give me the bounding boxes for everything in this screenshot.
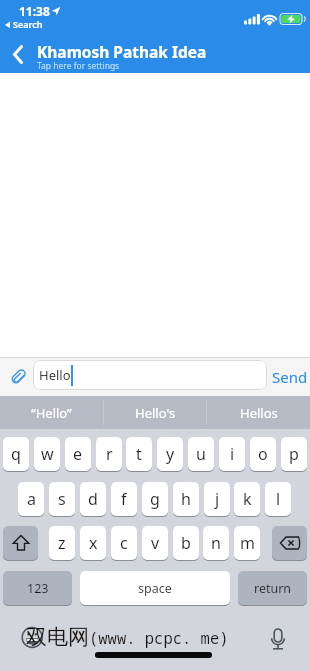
button[interactable]: Hello's (104, 396, 206, 429)
button[interactable]: n (203, 526, 229, 560)
button[interactable] (6, 42, 32, 68)
button[interactable]: m (234, 526, 260, 560)
button[interactable]: return (238, 571, 307, 605)
staticText: Khamosh Pathak Idea (37, 41, 207, 60)
button[interactable]: space (80, 571, 230, 605)
staticText: f (121, 488, 127, 510)
button[interactable]: b (173, 526, 199, 560)
staticText: p (289, 443, 299, 465)
staticText: j (215, 488, 220, 510)
button[interactable] (20, 625, 45, 650)
button[interactable]: c (111, 526, 137, 560)
button[interactable]: l (265, 482, 291, 516)
staticText: y (166, 443, 175, 465)
button[interactable]: Send (270, 357, 310, 396)
button[interactable] (266, 627, 290, 655)
button[interactable]: g (142, 482, 168, 516)
staticText: Hellos (240, 404, 278, 422)
staticText: k (243, 488, 252, 510)
button[interactable]: i (219, 437, 245, 471)
staticText: “Hello” (31, 404, 72, 422)
staticText: u (196, 443, 206, 465)
staticText: Send (272, 367, 308, 387)
button[interactable]: t (126, 437, 152, 471)
staticText: x (89, 532, 98, 554)
button[interactable]: w (34, 437, 60, 471)
button[interactable]: f (111, 482, 137, 516)
staticText: Hello (39, 366, 71, 384)
staticText: z (58, 532, 66, 554)
button[interactable]: r (96, 437, 122, 471)
button[interactable]: e (65, 437, 91, 471)
staticText: m (240, 532, 255, 554)
button[interactable] (272, 526, 307, 560)
staticText: b (181, 532, 191, 554)
staticText: v (151, 532, 160, 554)
staticText: space (138, 580, 172, 597)
button[interactable]: s (49, 482, 75, 516)
staticText: r (106, 443, 113, 465)
staticText: 双电网(www. pcpc. me) (26, 624, 229, 650)
button[interactable]: p (281, 437, 307, 471)
button[interactable]: z (49, 526, 75, 560)
staticText: e (73, 443, 83, 465)
staticText: o (258, 443, 268, 465)
staticText: return (254, 580, 292, 597)
button[interactable]: a (18, 482, 44, 516)
staticText: t (136, 443, 142, 465)
button[interactable]: v (142, 526, 168, 560)
button[interactable]: o (250, 437, 276, 471)
button[interactable]: Khamosh Pathak Idea (37, 41, 237, 60)
staticText: w (41, 443, 54, 465)
button[interactable]: u (188, 437, 214, 471)
button[interactable]: x (80, 526, 106, 560)
button[interactable]: q (3, 437, 29, 471)
staticText: c (120, 532, 128, 554)
button[interactable]: Hellos (207, 396, 310, 429)
button[interactable] (5, 364, 31, 390)
button[interactable]: y (157, 437, 183, 471)
staticText: i (230, 443, 235, 465)
staticText: l (276, 488, 281, 510)
staticText: Search (13, 18, 43, 30)
button[interactable]: Hello (33, 360, 267, 390)
button[interactable]: d (80, 482, 106, 516)
staticText: d (88, 488, 98, 510)
staticText: a (27, 488, 36, 510)
staticText: g (150, 488, 160, 510)
staticText: Hello's (135, 404, 176, 422)
staticText: q (11, 443, 21, 465)
button[interactable]: h (173, 482, 199, 516)
button[interactable]: j (204, 482, 230, 516)
button[interactable]: k (234, 482, 260, 516)
button[interactable]: 123 (3, 571, 72, 605)
staticText: n (211, 532, 221, 554)
staticText: h (181, 488, 191, 510)
staticText: s (58, 488, 66, 510)
staticText: Tap here for settings (37, 60, 120, 71)
staticText: 11:38 (19, 3, 50, 19)
staticText: 123 (27, 580, 49, 597)
button[interactable]: “Hello” (0, 396, 103, 429)
button[interactable] (3, 526, 38, 560)
